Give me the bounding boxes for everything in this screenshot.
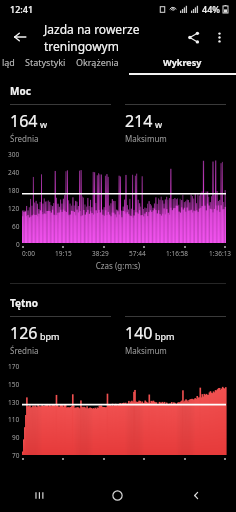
staticText: 38:29: [92, 249, 109, 258]
staticText: Średnia: [10, 133, 39, 144]
staticText: Okrążenia: [76, 56, 119, 68]
staticText: 240: [8, 168, 20, 177]
staticText: 140: [125, 322, 153, 344]
button[interactable]: More options: [206, 24, 232, 50]
button[interactable]: Home: [78, 478, 157, 512]
staticText: 1:36:13: [209, 249, 232, 258]
staticText: 120: [8, 204, 20, 213]
staticText: bpm: [40, 330, 60, 342]
staticText: 57:44: [129, 249, 146, 258]
staticText: 130: [8, 398, 20, 407]
staticText: 44%: [202, 3, 220, 15]
staticText: 170: [8, 362, 20, 371]
staticText: 60: [12, 222, 20, 231]
staticText: Maksimum: [125, 345, 167, 356]
staticText: 19:15: [55, 249, 72, 258]
staticText: Jazda na rowerze: [44, 21, 140, 37]
staticText: 126: [10, 322, 38, 344]
button[interactable]: Wykresy: [129, 56, 236, 75]
button[interactable]: Share: [180, 24, 206, 50]
staticText: Tętno: [10, 296, 39, 310]
button[interactable]: Back: [6, 23, 34, 51]
button[interactable]: Okrążenia: [76, 56, 119, 73]
button[interactable]: Recents: [0, 478, 78, 512]
staticText: Wykresy: [163, 56, 202, 68]
staticText: 12:41: [10, 3, 34, 15]
staticText: Moc: [10, 84, 31, 98]
staticText: Czas (g:m:s): [0, 260, 236, 271]
staticText: 150: [8, 380, 20, 389]
staticText: bpm: [155, 330, 175, 342]
button[interactable]: Statystyki: [25, 56, 66, 73]
button[interactable]: Back: [157, 478, 236, 512]
staticText: 70: [12, 451, 20, 460]
staticText: 1:16:58: [166, 249, 189, 258]
staticText: treningowym: [44, 38, 119, 54]
staticText: w: [40, 118, 48, 130]
staticText: 300: [8, 150, 20, 159]
staticText: 164: [10, 110, 38, 132]
staticText: 110: [8, 415, 20, 424]
staticText: Maksimum: [125, 133, 167, 144]
button[interactable]: ląd: [2, 56, 15, 73]
staticText: 0:00: [22, 249, 35, 258]
staticText: 180: [8, 186, 20, 195]
staticText: 214: [125, 110, 153, 132]
staticText: 0: [16, 240, 20, 249]
staticText: w: [155, 118, 163, 130]
staticText: ląd: [2, 56, 15, 68]
staticText: 90: [12, 433, 20, 442]
staticText: Średnia: [10, 345, 39, 356]
staticText: Statystyki: [25, 56, 66, 68]
